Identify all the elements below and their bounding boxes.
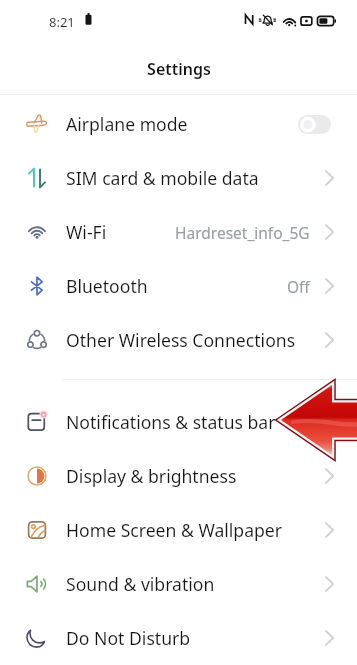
staticText: Off xyxy=(287,276,310,297)
button[interactable]: Home Screen & Wallpaper xyxy=(0,503,357,557)
staticText: Bluetooth xyxy=(66,274,287,298)
button[interactable] xyxy=(298,115,331,134)
staticText: Notifications & status bar xyxy=(66,410,325,434)
button[interactable]: Do Not Disturb xyxy=(0,611,357,665)
staticText: Hardreset_info_5G xyxy=(175,222,310,243)
staticText: Sound & vibration xyxy=(66,572,325,596)
button[interactable]: Notifications & status bar xyxy=(0,395,357,449)
staticText: Display & brightness xyxy=(66,464,325,488)
staticText: 8:21 xyxy=(49,13,75,31)
button[interactable]: Other Wireless Connections xyxy=(0,313,357,367)
button[interactable]: Display & brightness xyxy=(0,449,357,503)
button[interactable]: Bluetooth xyxy=(0,259,357,313)
staticText: Other Wireless Connections xyxy=(66,328,325,352)
button[interactable]: Wi-Fi xyxy=(0,205,357,259)
button[interactable]: SIM card & mobile data xyxy=(0,151,357,205)
staticText: Do Not Disturb xyxy=(66,626,325,650)
button[interactable]: Airplane mode xyxy=(0,97,357,151)
staticText: Home Screen & Wallpaper xyxy=(66,518,325,542)
staticText: Airplane mode xyxy=(66,112,298,136)
staticText: Settings xyxy=(147,58,211,80)
staticText: Wi-Fi xyxy=(66,220,175,244)
button[interactable]: Sound & vibration xyxy=(0,557,357,611)
staticText: SIM card & mobile data xyxy=(66,166,325,190)
